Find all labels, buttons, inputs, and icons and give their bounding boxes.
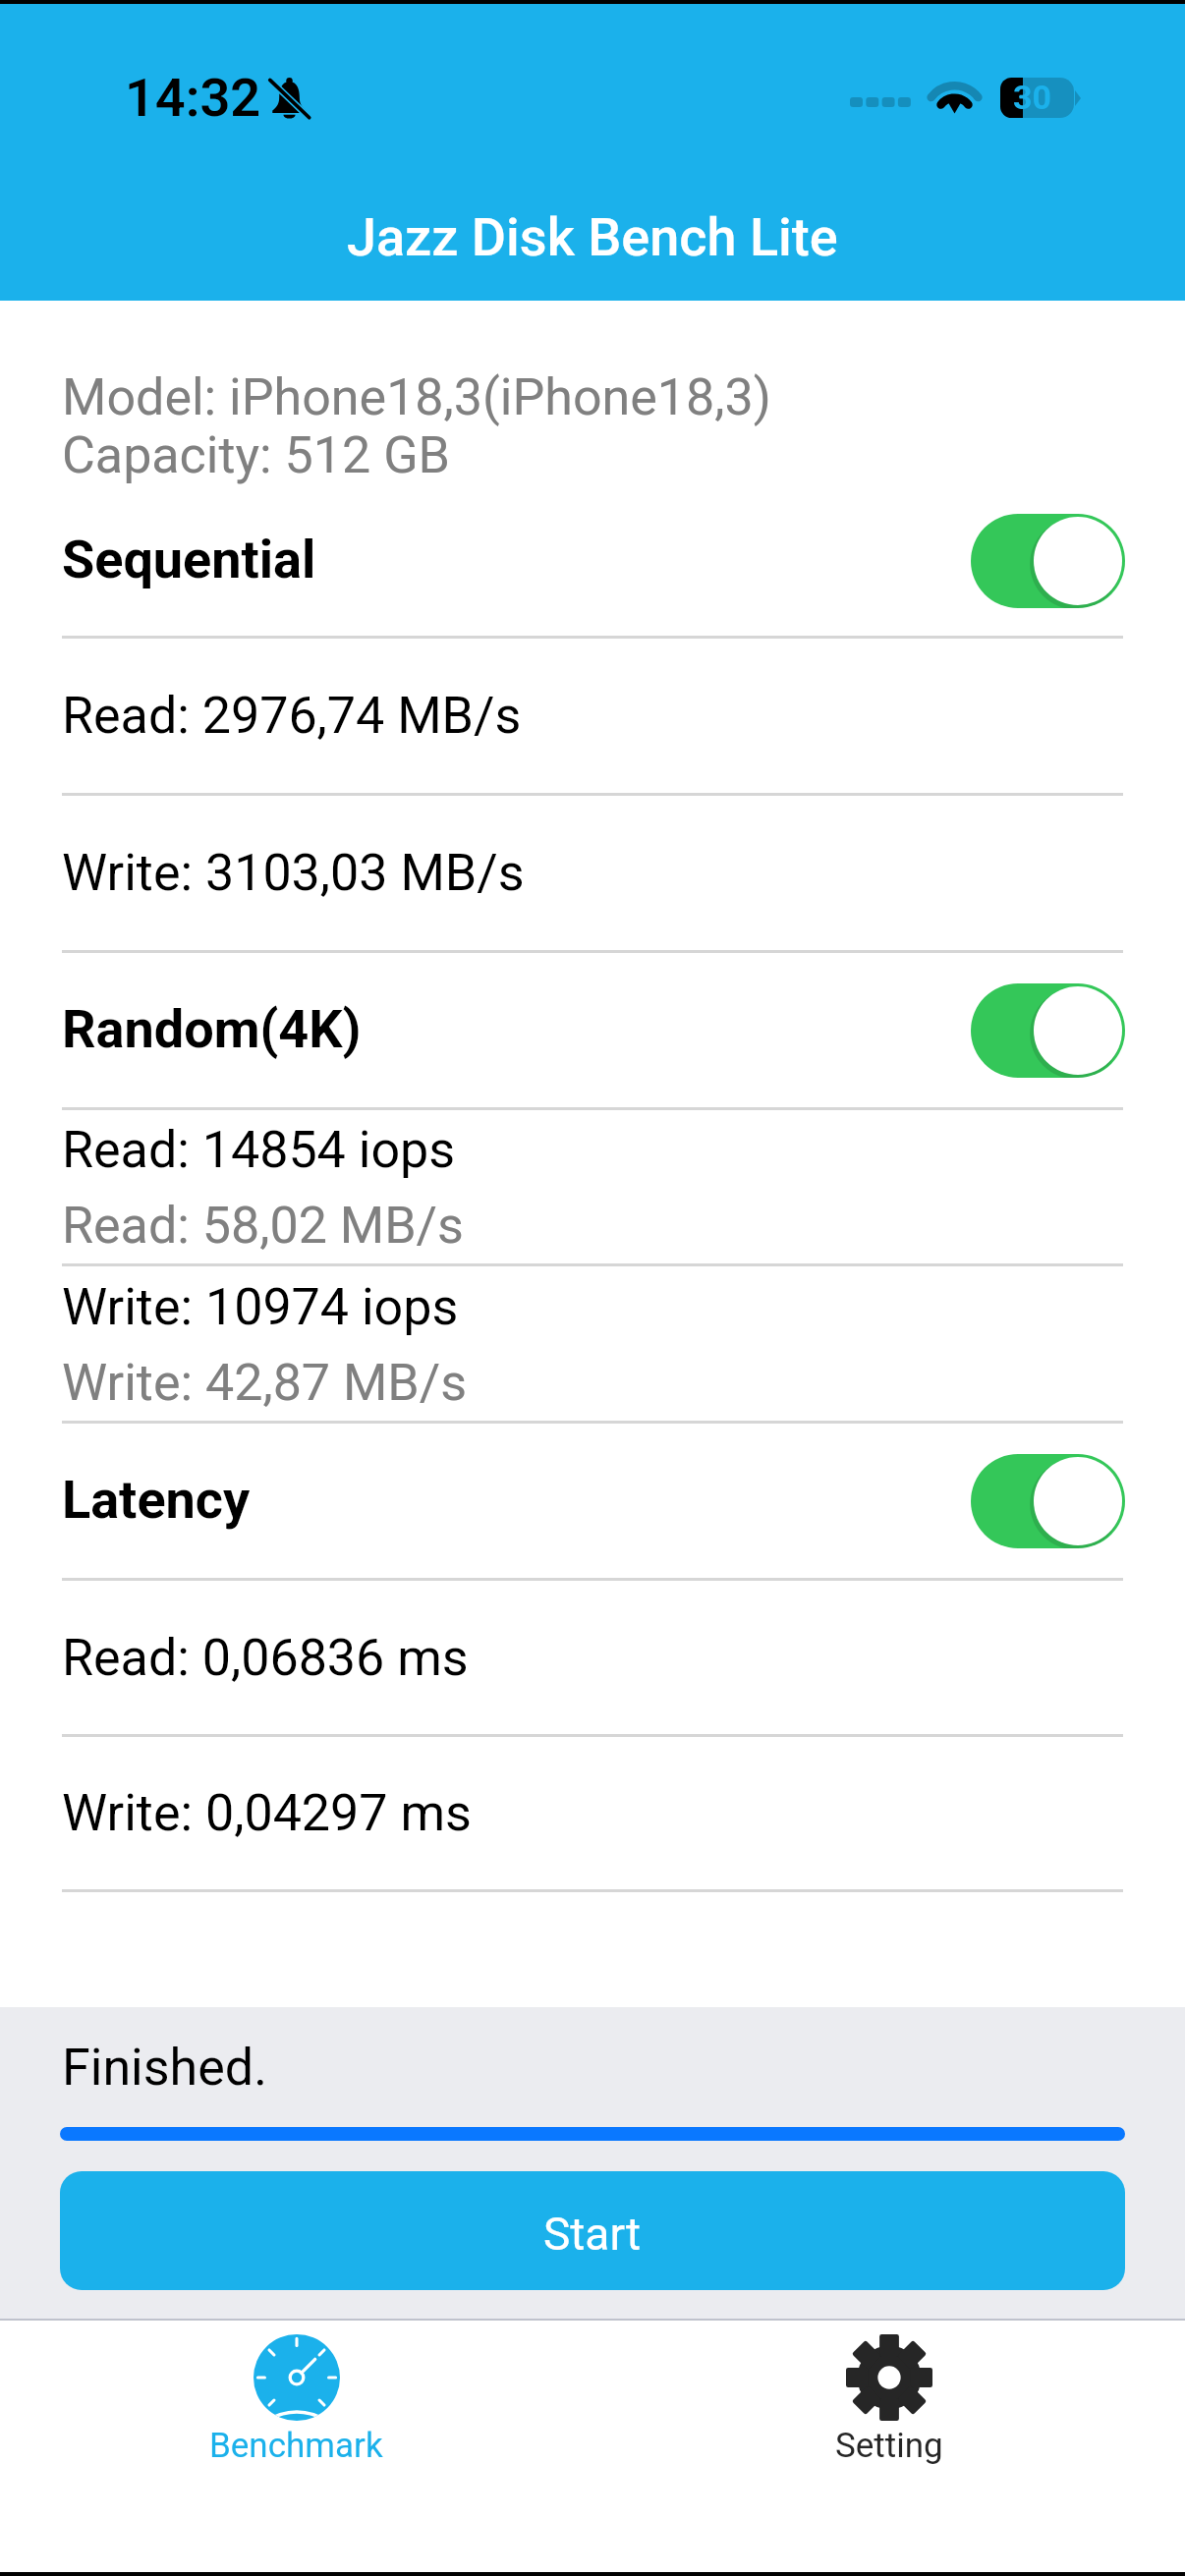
staticText: Model: iPhone18,3(iPhone18,3) xyxy=(62,368,771,426)
button[interactable]: Read: 2976,74 MB/s xyxy=(62,639,1185,793)
staticText: Read: 58,02 MB/s xyxy=(62,1183,464,1259)
staticText: Write: 42,87 MB/s xyxy=(62,1340,468,1416)
button[interactable]: Write: 3103,03 MB/s xyxy=(62,796,1185,950)
button[interactable]: Random(4K) xyxy=(62,953,1125,1107)
button[interactable]: Benchmark xyxy=(0,2321,592,2572)
staticText: Finished. xyxy=(62,2039,267,2097)
staticText: Read: 14854 iops xyxy=(62,1107,456,1183)
button[interactable]: Toggle xyxy=(971,983,1125,1078)
staticText: Benchmark xyxy=(209,2426,383,2466)
button[interactable]: Read: 14854 iops xyxy=(62,1110,1185,1263)
staticText: 30 xyxy=(1013,78,1052,117)
button[interactable]: Write: 0,04297 ms xyxy=(62,1737,1185,1889)
staticText: Read: 2976,74 MB/s xyxy=(62,687,522,745)
staticText: Setting xyxy=(835,2426,943,2466)
staticText: Sequential xyxy=(62,532,316,589)
staticText: Write: 10974 iops xyxy=(62,1264,459,1340)
staticText: Random(4K) xyxy=(62,1001,362,1059)
button[interactable]: Setting xyxy=(592,2321,1185,2572)
button[interactable]: Sequential xyxy=(62,485,1125,636)
button[interactable]: Latency xyxy=(62,1424,1125,1578)
staticText: 14:32 xyxy=(125,67,261,129)
staticText: Jazz Disk Bench Lite xyxy=(347,206,838,268)
staticText: Read: 0,06836 ms xyxy=(62,1629,469,1687)
staticText: Capacity: 512 GB xyxy=(62,426,450,484)
button[interactable]: Start xyxy=(60,2171,1125,2290)
button[interactable]: Toggle xyxy=(971,1454,1125,1548)
staticText: Write: 0,04297 ms xyxy=(62,1784,472,1842)
staticText: Write: 3103,03 MB/s xyxy=(62,844,525,902)
staticText: Latency xyxy=(62,1472,251,1530)
button[interactable]: Read: 0,06836 ms xyxy=(62,1581,1185,1734)
button[interactable]: Toggle xyxy=(971,514,1125,608)
button[interactable]: Write: 10974 iops xyxy=(62,1266,1185,1421)
staticText: Start xyxy=(543,2208,642,2261)
